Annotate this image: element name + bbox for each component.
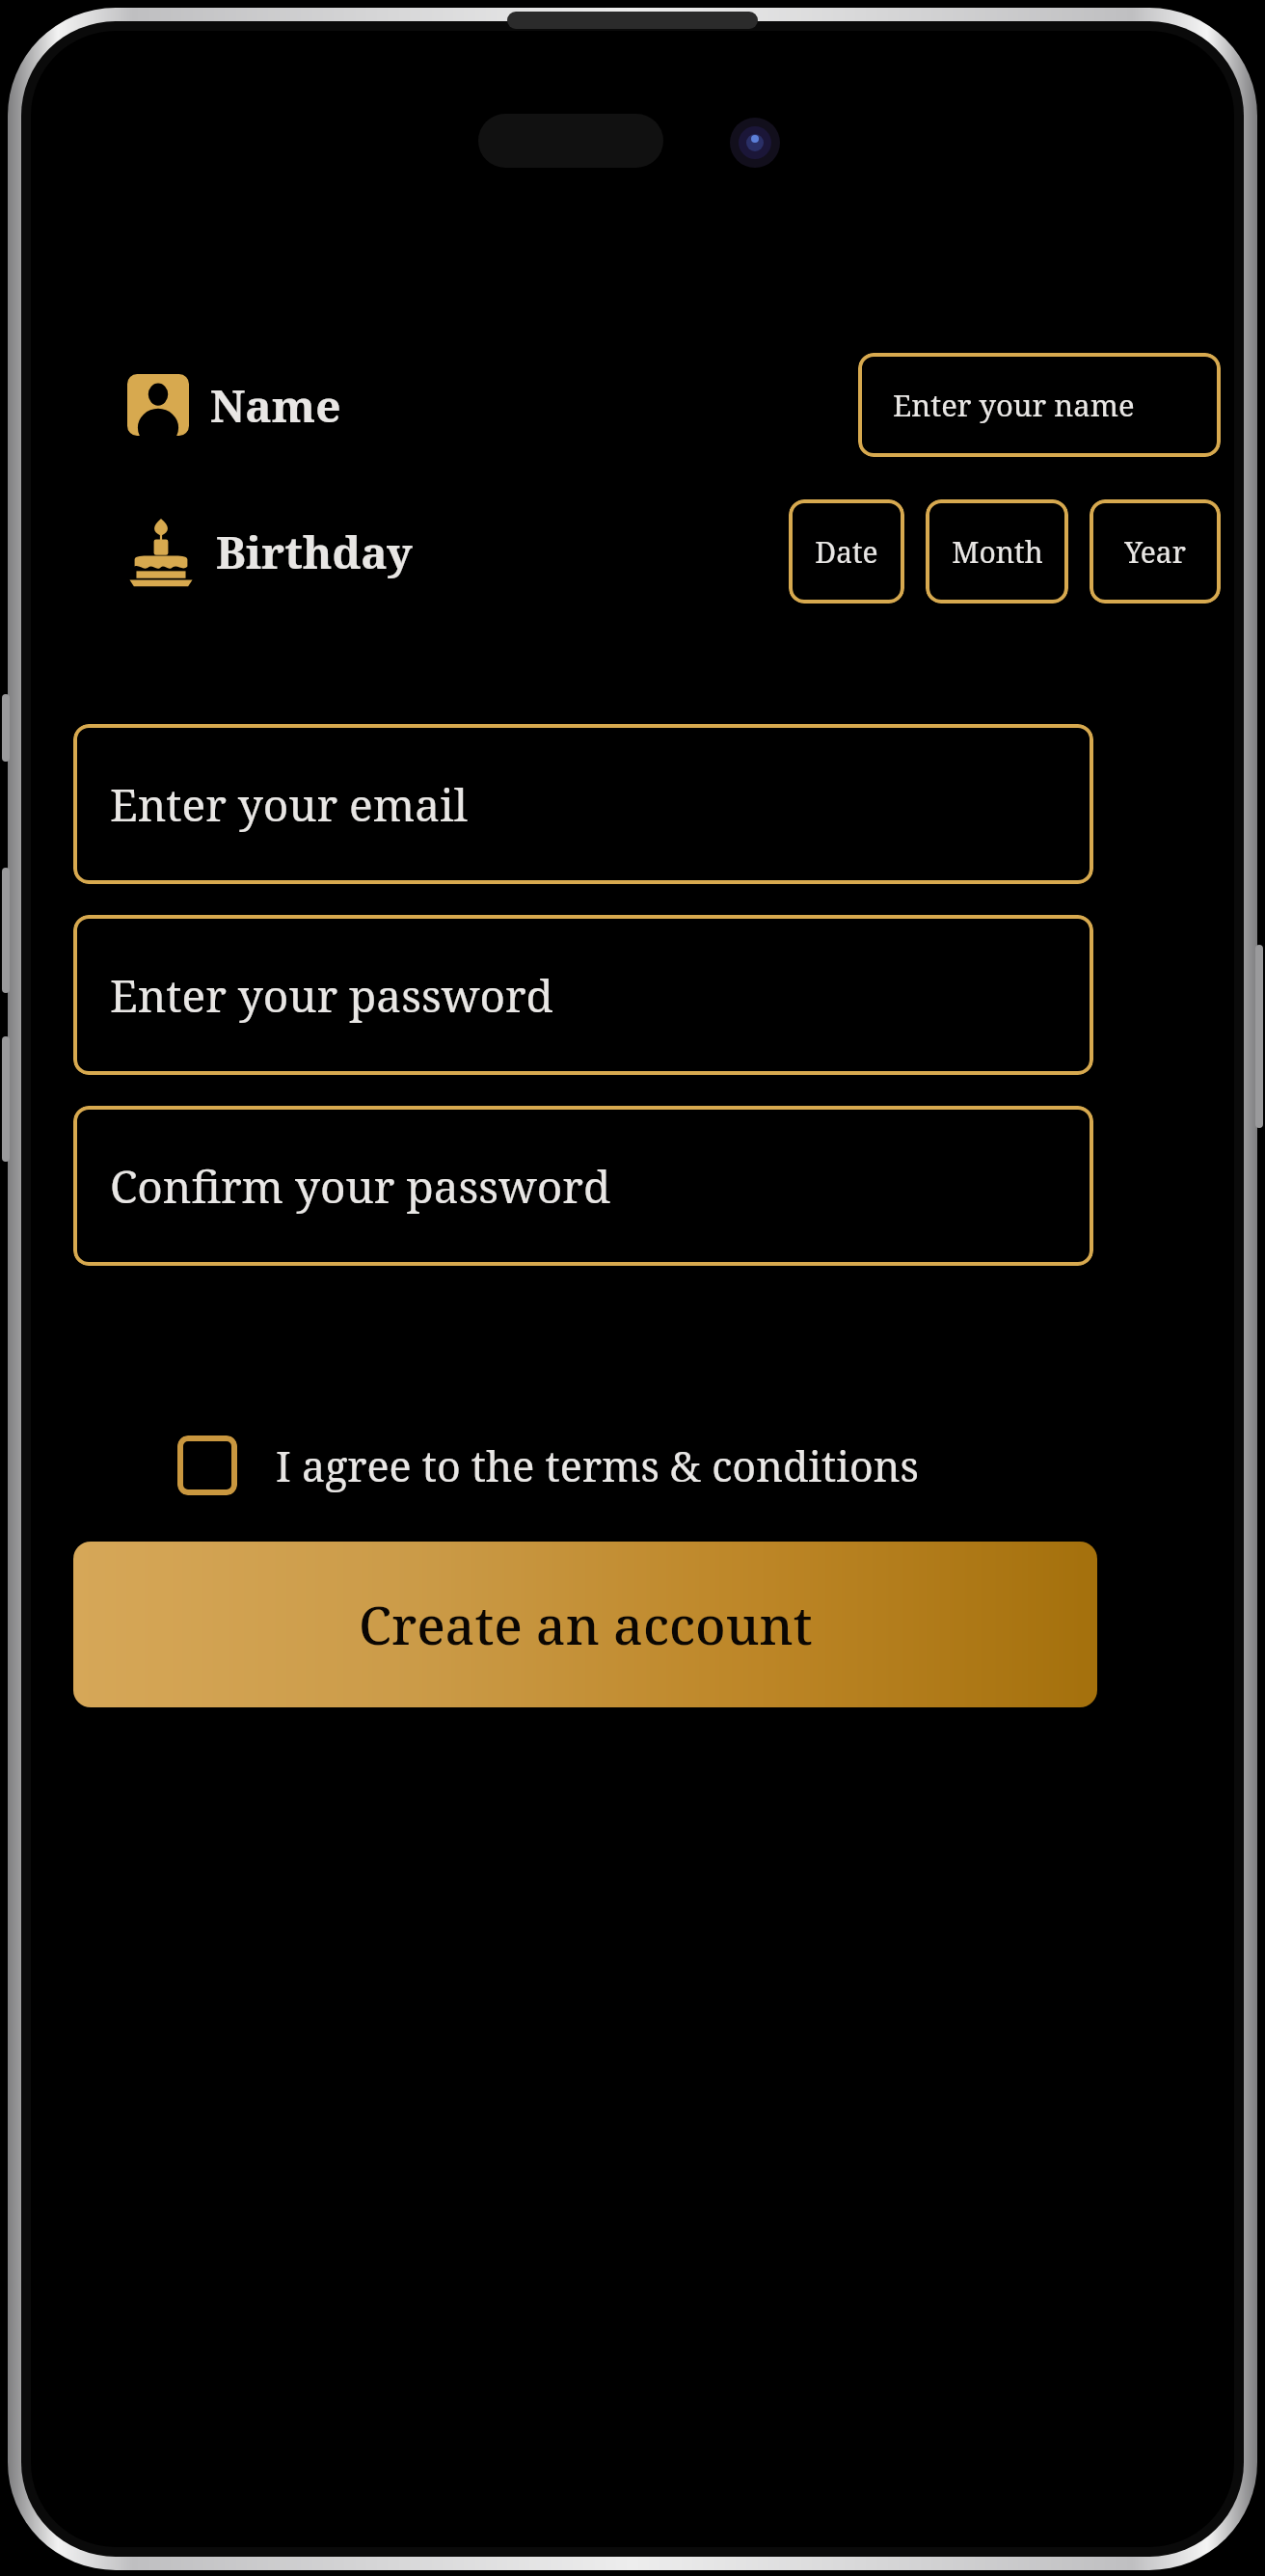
staticText: Enter your name [893,385,1135,425]
button[interactable]: Agree to terms checkbox [31,1436,1234,1495]
staticText: Enter your email [110,774,469,835]
button[interactable]: Enter your name [858,353,1221,457]
staticText: Year [1124,532,1186,572]
other: Birthday [125,516,197,587]
other: Name [127,374,189,436]
staticText: I agree to the terms & conditions [276,1437,919,1494]
button[interactable]: Enter your password [73,915,1093,1075]
staticText: Name [210,375,341,436]
button[interactable]: Year [1090,499,1221,604]
staticText: Month [952,532,1043,572]
staticText: Birthday [216,522,413,582]
staticText: Date [815,532,878,572]
other: Agree to terms checkbox [177,1436,237,1495]
staticText: Enter your password [110,965,553,1026]
button[interactable]: Create an account [73,1542,1097,1707]
staticText: Confirm your password [110,1156,611,1217]
button[interactable]: Month [926,499,1068,604]
button[interactable]: Enter your email [73,724,1093,884]
button[interactable]: Confirm your password [73,1106,1093,1266]
button[interactable]: Date [789,499,904,604]
staticText: Create an account [359,1589,813,1660]
